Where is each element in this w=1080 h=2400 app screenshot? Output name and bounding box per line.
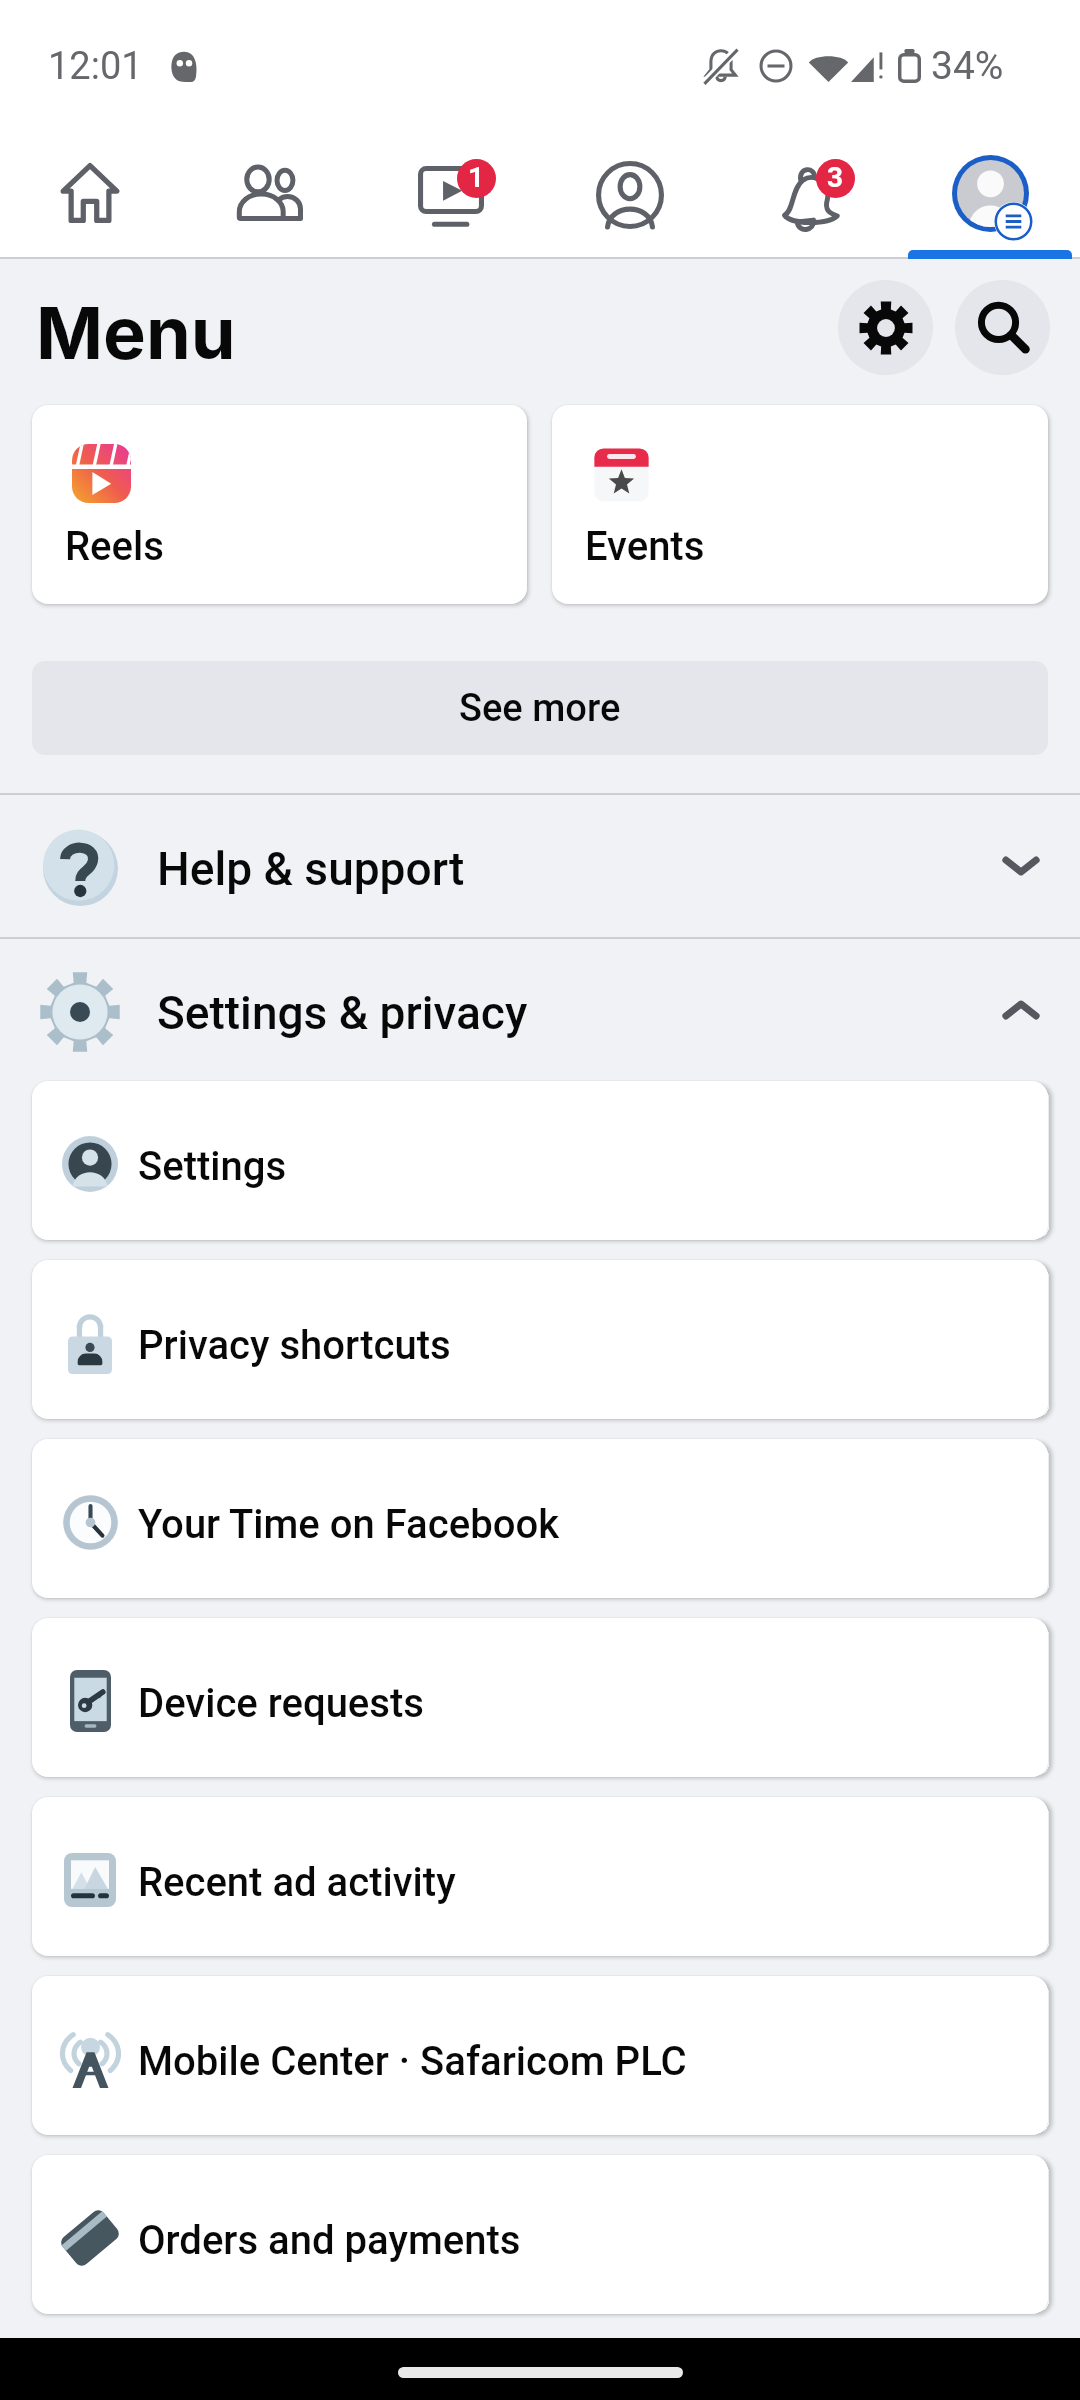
staticText: 1: [468, 161, 485, 194]
staticText: Orders and payments: [138, 2217, 521, 2264]
staticText: See more: [459, 686, 621, 731]
button[interactable]: Friends: [180, 120, 360, 259]
button[interactable]: Privacy shortcuts: [32, 1260, 1048, 1419]
button[interactable]: Profile: [540, 120, 720, 259]
button[interactable]: Search: [955, 280, 1050, 375]
staticText: Reels: [65, 523, 164, 570]
button[interactable]: Recent ad activity: [32, 1797, 1048, 1956]
staticText: Privacy shortcuts: [138, 1322, 451, 1369]
staticText: Menu: [36, 289, 236, 376]
button[interactable]: Settings: [838, 280, 933, 375]
staticText: 3: [827, 161, 844, 194]
button[interactable]: Reels: [32, 405, 527, 604]
staticText: Settings & privacy: [157, 986, 528, 1040]
button[interactable]: Your Time on Facebook: [32, 1439, 1048, 1598]
button[interactable]: Home: [0, 120, 180, 259]
button[interactable]: Video: [360, 120, 540, 259]
staticText: Help & support: [157, 842, 465, 896]
staticText: 34%: [931, 43, 1004, 89]
button[interactable]: Menu: [900, 120, 1080, 259]
staticText: Mobile Center · Safaricom PLC: [138, 2038, 687, 2085]
button[interactable]: Settings & privacy: [0, 939, 1080, 1081]
staticText: Recent ad activity: [138, 1859, 456, 1906]
button[interactable]: Mobile Center · Safaricom PLC: [32, 1976, 1048, 2135]
staticText: Events: [585, 523, 705, 570]
button[interactable]: Settings: [32, 1081, 1048, 1240]
button[interactable]: Help & support: [0, 795, 1080, 937]
staticText: Device requests: [138, 1680, 424, 1727]
button[interactable]: Orders and payments: [32, 2155, 1048, 2314]
button[interactable]: Notifications: [720, 120, 900, 259]
staticText: Your Time on Facebook: [138, 1501, 560, 1548]
button[interactable]: Events: [552, 405, 1048, 604]
staticText: Settings: [138, 1143, 287, 1190]
staticText: 12:01: [48, 44, 143, 89]
button[interactable]: Device requests: [32, 1618, 1048, 1777]
button[interactable]: See more: [32, 661, 1048, 755]
